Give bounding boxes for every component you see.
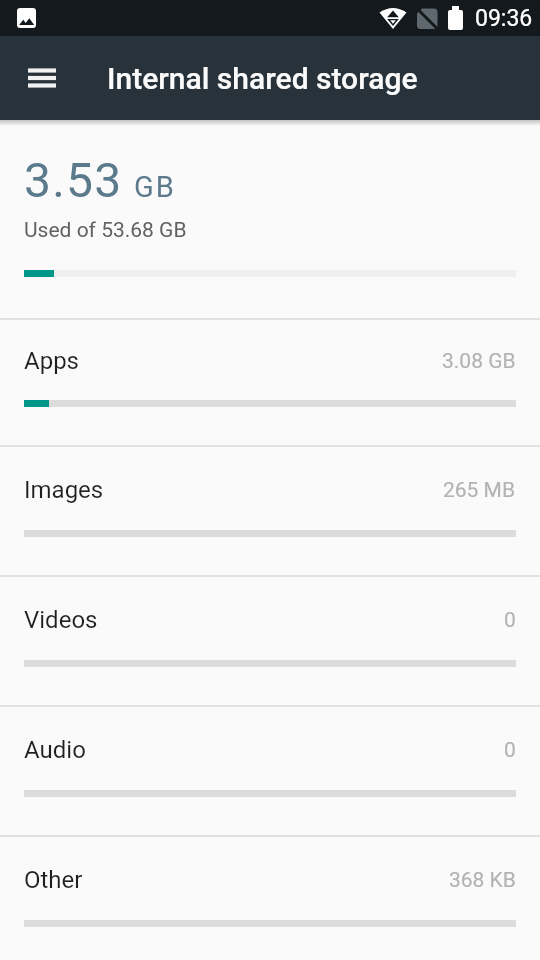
staticText: Other	[24, 866, 83, 894]
staticText: Internal shared storage	[107, 61, 418, 96]
button[interactable]: Apps	[0, 318, 540, 445]
staticText: 0	[504, 608, 516, 633]
button[interactable]	[16, 52, 68, 104]
staticText: Used of 53.68 GB	[24, 218, 187, 243]
button[interactable]: Images	[0, 445, 540, 575]
staticText: 3.08 GB	[442, 349, 516, 374]
button[interactable]: Audio	[0, 705, 540, 835]
staticText: 368 KB	[449, 868, 516, 893]
button[interactable]: Videos	[0, 575, 540, 705]
staticText: 09:36	[475, 5, 533, 32]
staticText: GB	[134, 170, 176, 204]
staticText: Audio	[24, 736, 86, 764]
staticText: 3.53	[24, 152, 123, 208]
staticText: Apps	[24, 347, 79, 375]
staticText: 0	[504, 738, 516, 763]
button[interactable]: Other	[0, 835, 540, 960]
staticText: Videos	[24, 606, 98, 634]
staticText: 265 MB	[443, 478, 516, 503]
staticText: Images	[24, 476, 104, 504]
